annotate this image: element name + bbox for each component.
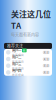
staticText: 推荐理由 [12,60,24,63]
staticText: 用户四 [12,68,21,73]
staticText: 关注 [43,64,49,68]
staticText: 每天都有新内容 [11,32,39,38]
staticText: 用户二 [12,55,21,60]
button[interactable]: 关注 [42,64,50,67]
button[interactable]: 关注 [42,57,50,61]
staticText: 推荐理由 [12,73,24,77]
staticText: 推荐理由 [12,53,24,57]
staticText: 新 [23,48,26,52]
staticText: 关注这几位TA [11,8,51,31]
staticText: 用户三 [12,61,21,66]
staticText: 关注 [43,70,49,74]
staticText: 关注 [43,50,49,54]
staticText: 推荐理由 [12,66,24,70]
staticText: 用户一 [12,48,21,53]
button[interactable]: 关注 [42,50,50,54]
staticText: 关注 [43,57,49,61]
button[interactable]: 关注 [42,71,50,74]
staticText: 推荐关注 [7,43,23,49]
